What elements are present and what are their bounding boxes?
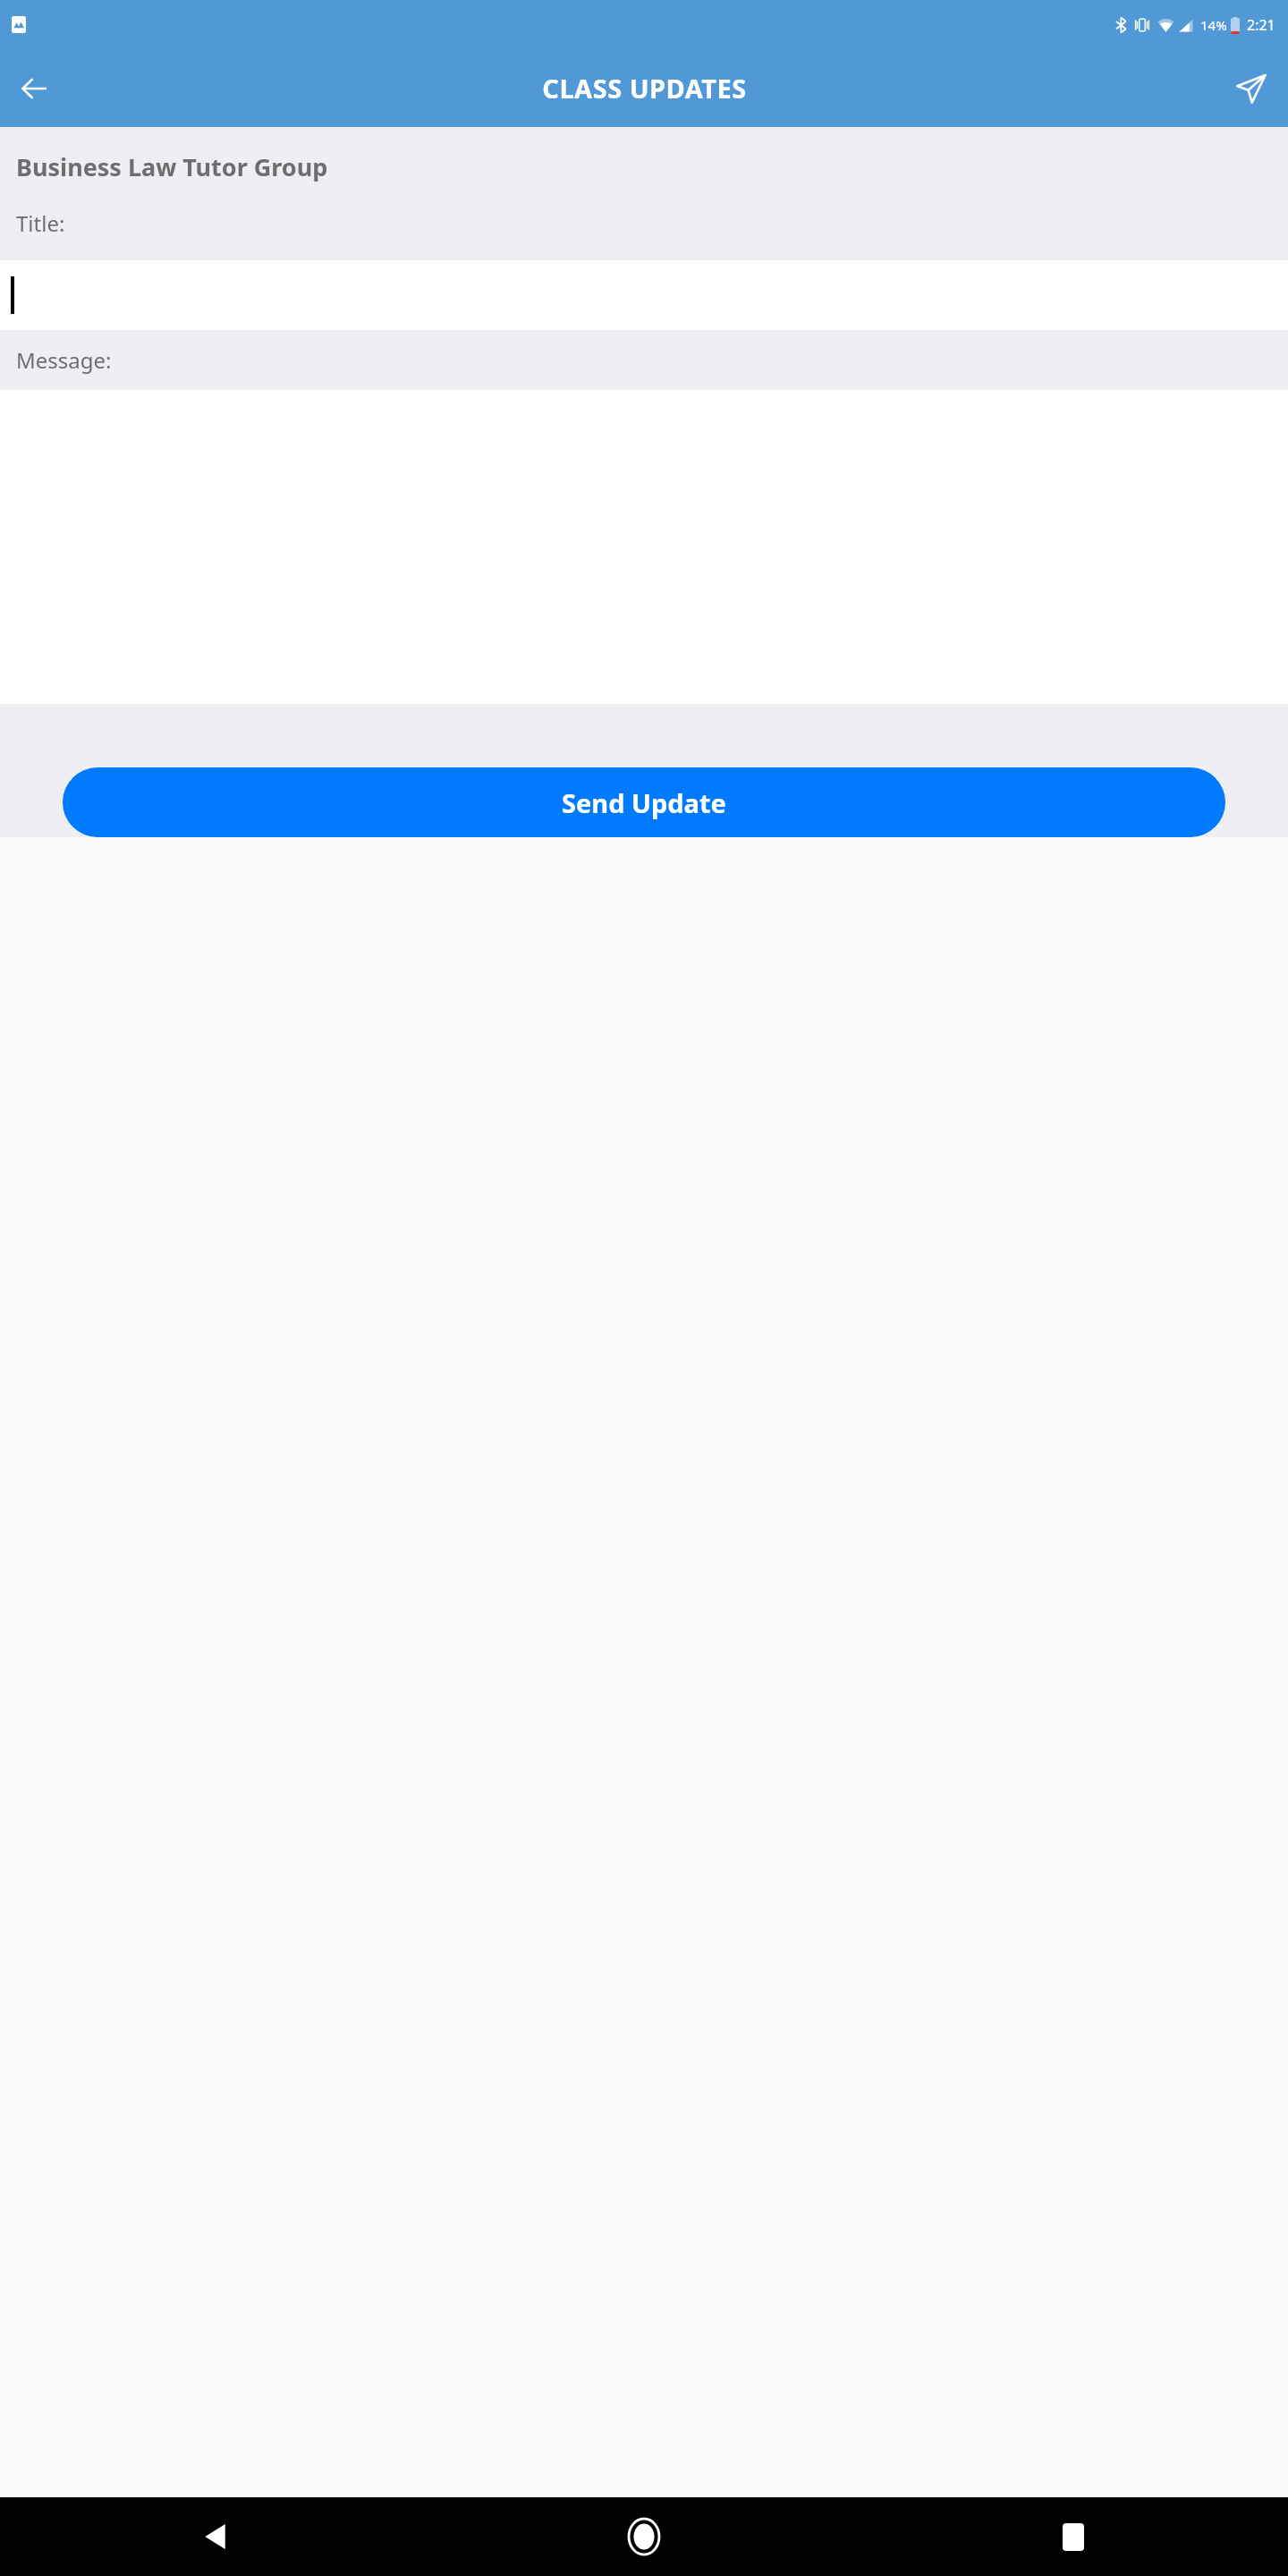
staticText: 14% — [1200, 16, 1227, 34]
button[interactable]: Home — [429, 2497, 859, 2576]
staticText: 2:21 — [1247, 15, 1275, 35]
button[interactable]: Title input — [0, 260, 1288, 330]
button[interactable]: Send — [1224, 61, 1279, 116]
button[interactable]: Back — [0, 2497, 429, 2576]
button[interactable]: Send Update — [63, 767, 1225, 837]
staticText: CLASS UPDATES — [542, 71, 747, 106]
staticText: Send Update — [562, 785, 726, 820]
button[interactable]: Back — [7, 62, 61, 115]
staticText: Title: — [16, 208, 65, 238]
staticText: Business Law Tutor Group — [16, 150, 328, 183]
staticText: Message: — [16, 345, 112, 375]
button[interactable]: Recent apps — [859, 2497, 1288, 2576]
